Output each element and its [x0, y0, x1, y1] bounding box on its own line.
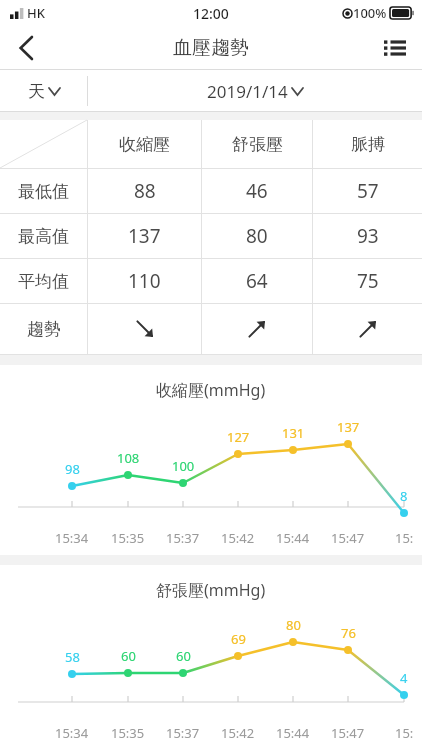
- staticText: 108: [117, 449, 140, 467]
- staticText: 137: [337, 418, 360, 436]
- staticText: 15:42: [221, 724, 255, 742]
- staticText: 58: [65, 648, 80, 666]
- staticText: 69: [231, 630, 246, 648]
- staticText: 80: [246, 223, 268, 249]
- staticText: 46: [246, 178, 268, 204]
- staticText: 8: [400, 487, 408, 505]
- staticText: 12:00: [193, 4, 229, 23]
- staticText: 15:37: [166, 724, 200, 742]
- staticText: 100%: [353, 4, 387, 22]
- staticText: 15:: [395, 724, 414, 742]
- staticText: 137: [128, 223, 161, 249]
- staticText: 15:47: [331, 724, 365, 742]
- staticText: 75: [357, 268, 379, 294]
- staticText: 最高值: [18, 226, 69, 247]
- staticText: 15:35: [111, 724, 145, 742]
- staticText: 60: [176, 647, 191, 665]
- staticText: 15:34: [55, 529, 89, 547]
- staticText: 15:35: [111, 529, 145, 547]
- staticText: 4: [400, 669, 408, 687]
- staticText: 15:37: [166, 529, 200, 547]
- staticText: 15:44: [276, 724, 310, 742]
- staticText: 平均值: [18, 271, 69, 292]
- staticText: HK: [27, 4, 45, 22]
- staticText: 57: [357, 178, 379, 204]
- staticText: 76: [341, 624, 356, 642]
- staticText: 64: [246, 268, 268, 294]
- staticText: 15:34: [55, 724, 89, 742]
- button[interactable]: List menu: [368, 26, 422, 70]
- staticText: 舒張壓(mmHg): [156, 579, 266, 601]
- staticText: 15:47: [331, 529, 365, 547]
- staticText: 天: [28, 81, 45, 102]
- staticText: 127: [227, 428, 250, 446]
- staticText: 收縮壓(mmHg): [156, 379, 266, 401]
- staticText: 收縮壓: [119, 134, 170, 155]
- staticText: 最低值: [18, 181, 69, 202]
- staticText: 98: [65, 460, 80, 478]
- button[interactable]: 天: [0, 70, 87, 112]
- staticText: 脈搏: [351, 134, 385, 155]
- staticText: 100: [172, 457, 195, 475]
- staticText: 88: [134, 178, 156, 204]
- staticText: 110: [128, 268, 161, 294]
- button[interactable]: Back: [0, 26, 52, 70]
- staticText: 93: [357, 223, 379, 249]
- button[interactable]: 2019/1/14: [88, 70, 422, 112]
- staticText: 60: [121, 647, 136, 665]
- staticText: 趨勢: [27, 319, 61, 340]
- staticText: 15:: [395, 529, 414, 547]
- staticText: 15:42: [221, 529, 255, 547]
- staticText: 131: [282, 424, 305, 442]
- staticText: 血壓趨勢: [173, 36, 249, 60]
- staticText: 舒張壓: [232, 134, 283, 155]
- staticText: 80: [286, 616, 301, 634]
- staticText: 2019/1/14: [207, 80, 288, 103]
- staticText: 15:44: [276, 529, 310, 547]
